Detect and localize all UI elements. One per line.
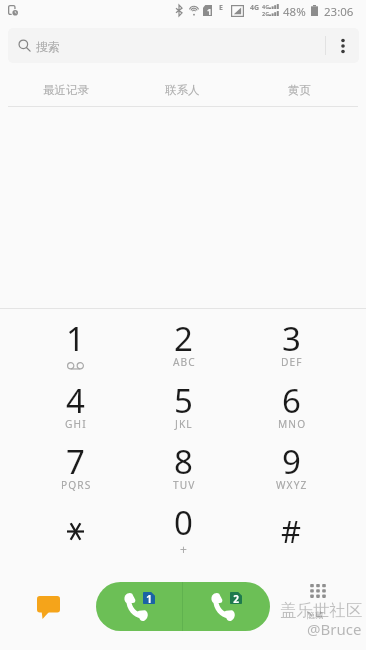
staticText: 4 xyxy=(66,378,85,423)
button[interactable]: 0 xyxy=(129,495,237,557)
button[interactable]: 2 xyxy=(129,309,237,371)
staticText: 4G xyxy=(262,3,270,10)
staticText: 4G xyxy=(250,3,260,13)
staticText: TUV xyxy=(173,478,196,492)
button[interactable]: More options xyxy=(326,28,359,63)
button[interactable]: 5 xyxy=(129,371,237,433)
staticText: 9 xyxy=(282,439,301,484)
button[interactable]: 7 xyxy=(21,433,129,495)
staticText: 5 xyxy=(174,378,193,423)
button[interactable]: # xyxy=(237,495,345,557)
staticText: ABC xyxy=(173,355,196,369)
staticText: JKL xyxy=(175,417,193,431)
staticText: E xyxy=(219,3,223,13)
button[interactable]: Call with SIM 1 xyxy=(96,582,182,631)
staticText: 联系人 xyxy=(165,83,200,97)
staticText: 23:06 xyxy=(324,4,354,20)
staticText: 隐藏 xyxy=(307,610,323,620)
staticText: WXYZ xyxy=(276,478,308,492)
button[interactable] xyxy=(21,495,129,557)
staticText: 搜索 xyxy=(36,39,60,54)
button[interactable]: 4 xyxy=(21,371,129,433)
button[interactable]: 1 xyxy=(21,309,129,371)
staticText: GHI xyxy=(65,417,87,431)
staticText: 2G xyxy=(262,10,270,17)
staticText: PQRS xyxy=(61,478,92,492)
staticText: 盖乐世社区 xyxy=(280,600,363,621)
staticText: # xyxy=(281,510,302,552)
button[interactable]: Call with SIM 2 xyxy=(183,582,270,631)
staticText: 2 xyxy=(233,592,239,604)
staticText: 1 xyxy=(207,6,212,17)
staticText: MNO xyxy=(278,417,307,431)
staticText: 最近记录 xyxy=(43,83,89,97)
button[interactable]: 搜索 xyxy=(8,28,325,63)
staticText: 0 xyxy=(174,500,193,545)
button[interactable]: Send message xyxy=(27,586,69,628)
staticText: 7 xyxy=(66,439,85,484)
staticText: @Bruce xyxy=(307,619,362,639)
staticText: 8 xyxy=(174,439,193,484)
staticText: + xyxy=(180,541,187,557)
button[interactable]: 6 xyxy=(237,371,345,433)
staticText: 黄页 xyxy=(288,83,311,97)
staticText: DEF xyxy=(281,355,303,369)
staticText: 6 xyxy=(282,378,301,423)
button[interactable]: 9 xyxy=(237,433,345,495)
button[interactable]: 黄页 xyxy=(241,68,358,106)
button[interactable]: 3 xyxy=(237,309,345,371)
button[interactable]: 联系人 xyxy=(124,68,241,106)
staticText: 1 xyxy=(66,316,85,361)
button[interactable]: 8 xyxy=(129,433,237,495)
staticText: 1 xyxy=(146,592,152,604)
button[interactable]: 最近记录 xyxy=(8,68,124,106)
staticText: 2 xyxy=(174,316,193,361)
staticText: 3 xyxy=(282,316,301,361)
staticText: 48% xyxy=(283,4,306,20)
button[interactable]: Hide keypad xyxy=(301,573,334,606)
